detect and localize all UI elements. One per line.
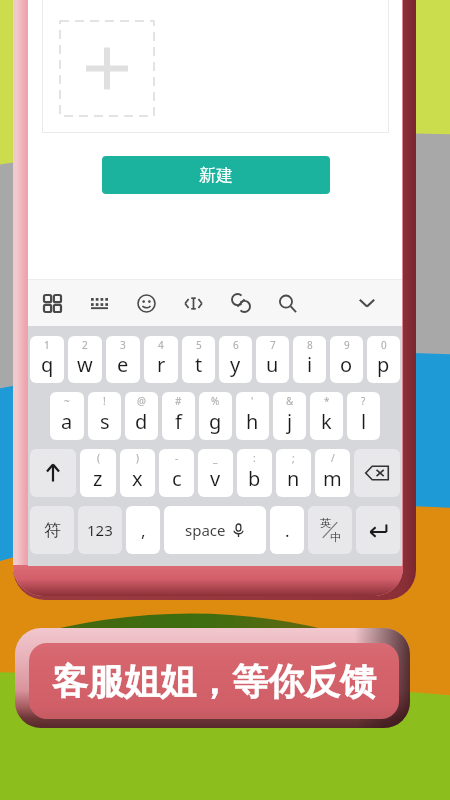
button[interactable]: [354, 449, 400, 497]
button[interactable]: 7: [256, 336, 289, 383]
button[interactable]: ': [236, 392, 269, 440]
staticText: q: [41, 351, 54, 378]
staticText: ?: [361, 394, 366, 408]
staticText: x: [132, 465, 143, 492]
staticText: i: [307, 351, 313, 378]
button[interactable]: Apps: [29, 280, 76, 326]
staticText: 新建: [199, 165, 233, 186]
staticText: 123: [87, 520, 113, 540]
button[interactable]: 123: [78, 506, 122, 554]
button[interactable]: :: [237, 449, 272, 497]
button[interactable]: /: [315, 449, 350, 497]
staticText: ~: [64, 394, 70, 408]
staticText: -: [175, 451, 179, 465]
button[interactable]: Search: [264, 280, 311, 326]
staticText: d: [135, 408, 148, 435]
staticText: e: [117, 351, 129, 378]
button[interactable]: [30, 449, 76, 497]
button[interactable]: %: [199, 392, 232, 440]
button[interactable]: Hide keyboard: [344, 280, 390, 326]
button[interactable]: Attach: [217, 280, 264, 326]
staticText: 0: [381, 338, 387, 352]
staticText: !: [103, 394, 106, 408]
staticText: p: [377, 351, 390, 378]
button[interactable]: 3: [106, 336, 140, 383]
staticText: ;: [292, 451, 295, 465]
staticText: h: [246, 408, 259, 435]
staticText: r: [157, 351, 166, 378]
button[interactable]: 英: [308, 506, 352, 554]
button[interactable]: Keyboard: [76, 280, 123, 326]
staticText: #: [175, 394, 182, 408]
staticText: @: [137, 394, 146, 408]
button[interactable]: ): [120, 449, 155, 497]
button[interactable]: 8: [293, 336, 326, 383]
staticText: 5: [196, 338, 202, 352]
button[interactable]: .: [270, 506, 304, 554]
staticText: j: [287, 408, 293, 435]
button[interactable]: 4: [144, 336, 178, 383]
button[interactable]: 2: [68, 336, 102, 383]
button[interactable]: 符: [30, 506, 74, 554]
staticText: ): [136, 451, 139, 465]
staticText: o: [340, 351, 353, 378]
staticText: 6: [233, 338, 239, 352]
staticText: ,: [141, 519, 146, 542]
staticText: n: [287, 465, 300, 492]
staticText: *: [324, 394, 330, 408]
staticText: 符: [44, 520, 61, 541]
button[interactable]: Add image: [60, 21, 154, 116]
staticText: y: [230, 351, 241, 378]
button[interactable]: #: [162, 392, 195, 440]
staticText: v: [210, 465, 221, 492]
button[interactable]: (: [80, 449, 116, 497]
button[interactable]: [356, 506, 400, 554]
staticText: w: [77, 351, 93, 378]
button[interactable]: !: [88, 392, 121, 440]
staticText: 中: [330, 530, 341, 544]
staticText: u: [266, 351, 279, 378]
staticText: ': [251, 394, 254, 408]
button[interactable]: 5: [182, 336, 215, 383]
staticText: z: [93, 465, 103, 492]
button[interactable]: @: [125, 392, 158, 440]
staticText: 2: [82, 338, 88, 352]
staticText: g: [209, 408, 222, 435]
button[interactable]: ,: [126, 506, 160, 554]
button[interactable]: &: [273, 392, 306, 440]
button[interactable]: Emoji: [123, 280, 170, 326]
button[interactable]: ~: [50, 392, 84, 440]
button[interactable]: ?: [347, 392, 380, 440]
staticText: 9: [344, 338, 350, 352]
staticText: 客服姐姐，等你反馈: [52, 659, 376, 704]
staticText: .: [285, 519, 290, 542]
button[interactable]: _: [198, 449, 233, 497]
staticText: 8: [307, 338, 313, 352]
button[interactable]: ;: [276, 449, 311, 497]
button[interactable]: Text cursor: [170, 280, 217, 326]
staticText: k: [321, 408, 332, 435]
button[interactable]: 6: [219, 336, 252, 383]
button[interactable]: [15, 628, 410, 728]
button[interactable]: space: [164, 506, 266, 554]
staticText: 1: [44, 338, 50, 352]
staticText: _: [213, 451, 218, 465]
staticText: /: [331, 451, 335, 465]
staticText: (: [97, 451, 100, 465]
button[interactable]: *: [310, 392, 343, 440]
staticText: m: [323, 465, 342, 492]
button[interactable]: 0: [367, 336, 400, 383]
staticText: space: [185, 520, 226, 540]
staticText: :: [253, 451, 256, 465]
staticText: %: [211, 394, 220, 408]
staticText: 7: [270, 338, 276, 352]
button[interactable]: 9: [330, 336, 363, 383]
button[interactable]: 新建: [102, 156, 330, 194]
staticText: f: [175, 408, 182, 435]
staticText: &: [286, 394, 294, 408]
staticText: 英: [320, 516, 331, 530]
button[interactable]: -: [159, 449, 194, 497]
staticText: c: [172, 465, 182, 492]
staticText: 3: [120, 338, 126, 352]
button[interactable]: 1: [30, 336, 64, 383]
